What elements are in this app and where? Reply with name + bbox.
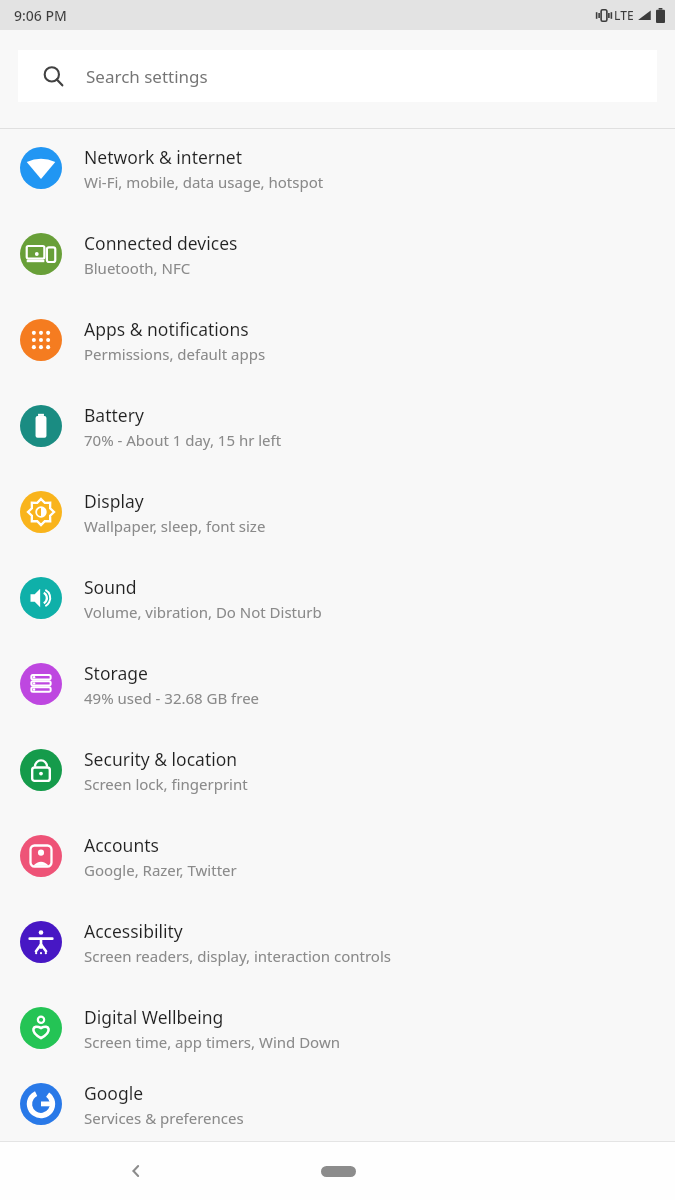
button[interactable]: Storage [0,641,675,727]
button[interactable]: Apps & notifications [0,297,675,383]
staticText: Storage [84,661,148,685]
staticText: Screen lock, fingerprint [84,774,248,794]
staticText: Security & location [84,747,238,771]
button[interactable]: Back [112,1147,160,1195]
staticText: Screen readers, display, interaction con… [84,946,391,966]
button[interactable]: Battery [0,383,675,469]
staticText: Battery [84,403,144,427]
staticText: Network & internet [84,145,243,169]
staticText: Wallpaper, sleep, font size [84,516,266,536]
staticText: Volume, vibration, Do Not Disturb [84,602,322,622]
staticText: Sound [84,575,137,599]
button[interactable]: Network & internet [0,125,675,211]
button[interactable]: Google [0,1071,675,1137]
staticText: LTE [614,7,634,23]
button[interactable]: Accounts [0,813,675,899]
staticText: Accounts [84,833,159,857]
staticText: Google [84,1081,144,1105]
button[interactable]: Search settings [18,50,657,102]
staticText: Wi-Fi, mobile, data usage, hotspot [84,172,324,192]
button[interactable]: Connected devices [0,211,675,297]
staticText: Search settings [86,65,208,88]
staticText: Permissions, default apps [84,344,266,364]
staticText: Display [84,489,144,513]
button[interactable]: Home [308,1151,368,1191]
staticText: Connected devices [84,231,238,255]
button[interactable]: Accessibility [0,899,675,985]
staticText: Apps & notifications [84,317,249,341]
staticText: Services & preferences [84,1108,244,1128]
staticText: 70% - About 1 day, 15 hr left [84,430,282,450]
staticText: 9:06 PM [14,6,67,25]
staticText: Google, Razer, Twitter [84,860,237,880]
staticText: Accessibility [84,919,183,943]
staticText: Digital Wellbeing [84,1005,224,1029]
staticText: Bluetooth, NFC [84,258,191,278]
button[interactable]: Digital Wellbeing [0,985,675,1071]
button[interactable]: Security & location [0,727,675,813]
button[interactable]: Sound [0,555,675,641]
button[interactable]: Display [0,469,675,555]
staticText: 49% used - 32.68 GB free [84,688,260,708]
staticText: Screen time, app timers, Wind Down [84,1032,340,1052]
